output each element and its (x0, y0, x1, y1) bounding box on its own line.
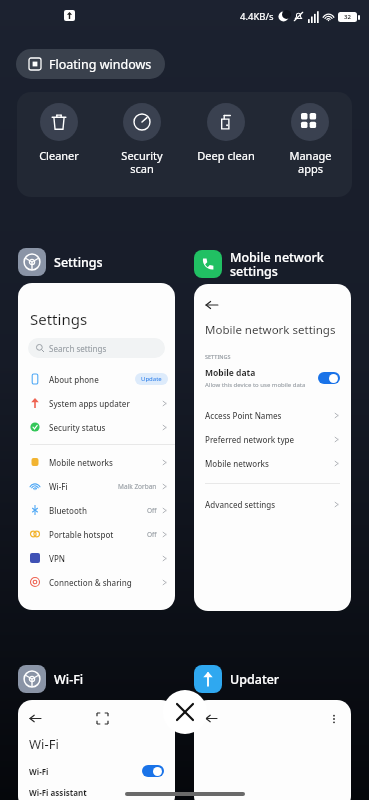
staticText: Off (147, 530, 157, 539)
staticText: Bluetooth (49, 505, 147, 516)
button[interactable]: Close (163, 690, 207, 734)
button[interactable]: More options (328, 713, 340, 725)
button[interactable]: About phone (18, 367, 175, 391)
button[interactable]: Floating windows (16, 49, 165, 79)
button[interactable]: Mobile networks (18, 450, 175, 474)
staticText: Search settings (49, 343, 107, 354)
button[interactable]: Back (194, 700, 351, 800)
staticText: Manage apps (289, 148, 332, 176)
button[interactable]: Manage apps (268, 92, 352, 197)
staticText: SETTINGS (205, 353, 231, 360)
staticText: Mobile networks (49, 457, 161, 468)
staticText: Mobile network settings (230, 249, 324, 280)
button[interactable]: Back (205, 298, 219, 312)
button[interactable]: Portable hotspot (18, 522, 175, 546)
staticText: Malk Zorban (118, 482, 157, 491)
button[interactable]: Back (205, 712, 218, 725)
button[interactable]: Security status (18, 415, 175, 439)
button[interactable]: Back (29, 712, 42, 725)
staticText: Wi-Fi (54, 671, 84, 688)
staticText: Mobile network settings (205, 322, 336, 338)
staticText: Wi-Fi assistant (29, 787, 87, 798)
staticText: Wi-Fi (49, 481, 118, 492)
staticText: Advanced settings (205, 499, 333, 510)
staticText: Mobile networks (205, 458, 333, 469)
button[interactable]: Security scan (100, 92, 184, 197)
staticText: About phone (49, 374, 135, 385)
staticText: Update (141, 375, 162, 383)
button[interactable]: Updater (194, 663, 351, 695)
staticText: Portable hotspot (49, 529, 147, 540)
button[interactable]: Access Point Names (194, 403, 351, 427)
staticText: Mobile data (205, 367, 256, 379)
button[interactable]: Settings (18, 283, 175, 610)
staticText: Floating windows (49, 56, 152, 73)
button[interactable]: Wi-Fi (18, 765, 175, 777)
button[interactable]: VPN (18, 546, 175, 570)
staticText: Wi-Fi (29, 735, 59, 753)
button[interactable]: System apps updater (18, 391, 175, 415)
button[interactable]: Advanced settings (194, 492, 351, 516)
button[interactable]: Wi-Fi (18, 663, 175, 695)
button[interactable]: Back (18, 700, 175, 800)
staticText: System apps updater (49, 398, 161, 409)
button[interactable]: Back (194, 284, 351, 611)
staticText: Connection & sharing (49, 577, 161, 588)
staticText: Access Point Names (205, 410, 333, 421)
staticText: Cleaner (39, 148, 79, 163)
staticText: VPN (49, 553, 161, 564)
button[interactable]: Wi-Fi (18, 474, 175, 498)
button[interactable]: Bluetooth (18, 498, 175, 522)
button[interactable]: Mobile network settings (194, 246, 351, 282)
button[interactable]: Deep clean (184, 92, 268, 197)
staticText: Wi-Fi (29, 766, 142, 777)
button[interactable]: Search settings (28, 338, 165, 358)
button[interactable]: Mobile networks (194, 451, 351, 475)
staticText: Updater (230, 671, 280, 688)
staticText: Security scan (121, 148, 163, 176)
staticText: Preferred network type (205, 434, 333, 445)
staticText: 32 (344, 13, 351, 21)
staticText: Deep clean (197, 148, 255, 163)
staticText: Off (147, 506, 157, 515)
staticText: Security status (49, 422, 161, 433)
staticText: Settings (54, 254, 103, 271)
staticText: Allow this device to use mobile data (205, 381, 306, 389)
button[interactable]: Connection & sharing (18, 570, 175, 594)
button[interactable]: Scan QR (97, 713, 108, 724)
staticText: 4.4KB/s (240, 10, 274, 23)
button[interactable]: Settings (18, 246, 175, 278)
button[interactable]: Cleaner (17, 92, 100, 197)
button[interactable]: Mobile data (194, 367, 351, 389)
staticText: Settings (30, 309, 88, 329)
button[interactable]: Preferred network type (194, 427, 351, 451)
